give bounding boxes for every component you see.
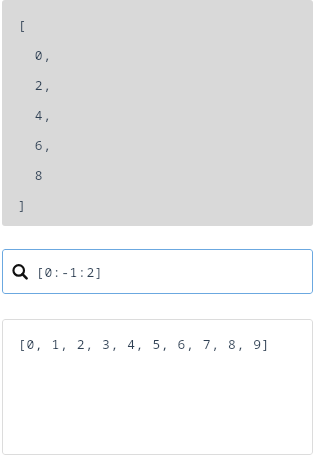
button[interactable]: [0, 1, 2, 3, 4, 5, 6, 7, 8, 9] (2, 319, 313, 455)
staticText: 0, (18, 46, 52, 76)
staticText: ] (18, 196, 27, 226)
staticText: 6, (18, 136, 52, 166)
button[interactable]: [ (2, 0, 313, 226)
staticText: 8 (18, 166, 44, 196)
staticText: [0, 1, 2, 3, 4, 5, 6, 7, 8, 9] (18, 335, 271, 353)
staticText: [ (18, 16, 27, 46)
staticText: 4, (18, 106, 52, 136)
staticText: [0:-1:2] (36, 263, 104, 281)
staticText: 2, (18, 76, 52, 106)
button[interactable]: Search expression (2, 249, 313, 294)
